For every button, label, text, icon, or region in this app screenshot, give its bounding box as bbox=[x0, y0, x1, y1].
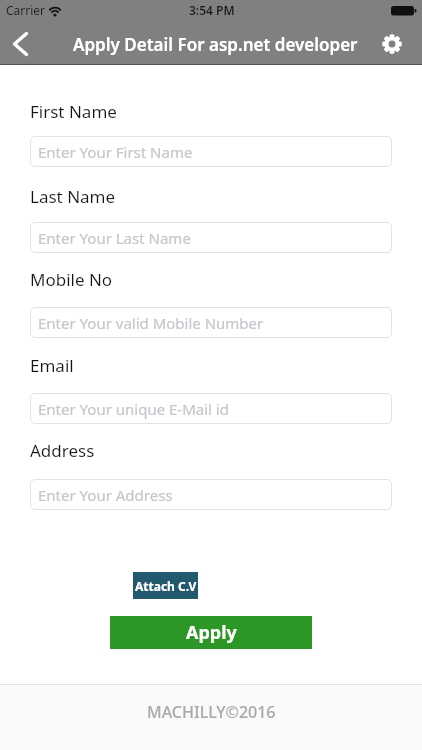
staticText: Carrier bbox=[6, 2, 46, 18]
button[interactable]: Enter Your Last Name bbox=[30, 222, 392, 253]
staticText: Enter Your First Name bbox=[38, 142, 193, 162]
staticText: Mobile No bbox=[30, 268, 113, 291]
staticText: Email bbox=[30, 354, 74, 377]
staticText: Attach C.V bbox=[135, 578, 197, 594]
button[interactable]: Enter Your unique E-Mail id bbox=[30, 393, 392, 424]
button[interactable]: Enter Your valid Mobile Number bbox=[30, 307, 392, 338]
button[interactable]: Apply bbox=[110, 616, 312, 649]
staticText: Apply bbox=[186, 620, 237, 645]
staticText: First Name bbox=[30, 100, 117, 123]
button[interactable]: Enter Your First Name bbox=[30, 136, 392, 167]
button[interactable] bbox=[6, 28, 38, 60]
button[interactable]: Attach C.V bbox=[133, 572, 198, 599]
button[interactable] bbox=[377, 29, 407, 59]
staticText: Last Name bbox=[30, 185, 116, 208]
staticText: Enter Your Address bbox=[38, 485, 173, 505]
staticText: Enter Your unique E-Mail id bbox=[38, 399, 229, 419]
staticText: Address bbox=[30, 439, 95, 462]
button[interactable]: Enter Your Address bbox=[30, 479, 392, 510]
staticText: Enter Your Last Name bbox=[38, 228, 191, 248]
staticText: 3:54 PM bbox=[189, 2, 235, 18]
staticText: Apply Detail For asp.net developer bbox=[73, 33, 358, 56]
staticText: MACHILLY©2016 bbox=[147, 701, 276, 723]
staticText: Enter Your valid Mobile Number bbox=[38, 313, 264, 333]
